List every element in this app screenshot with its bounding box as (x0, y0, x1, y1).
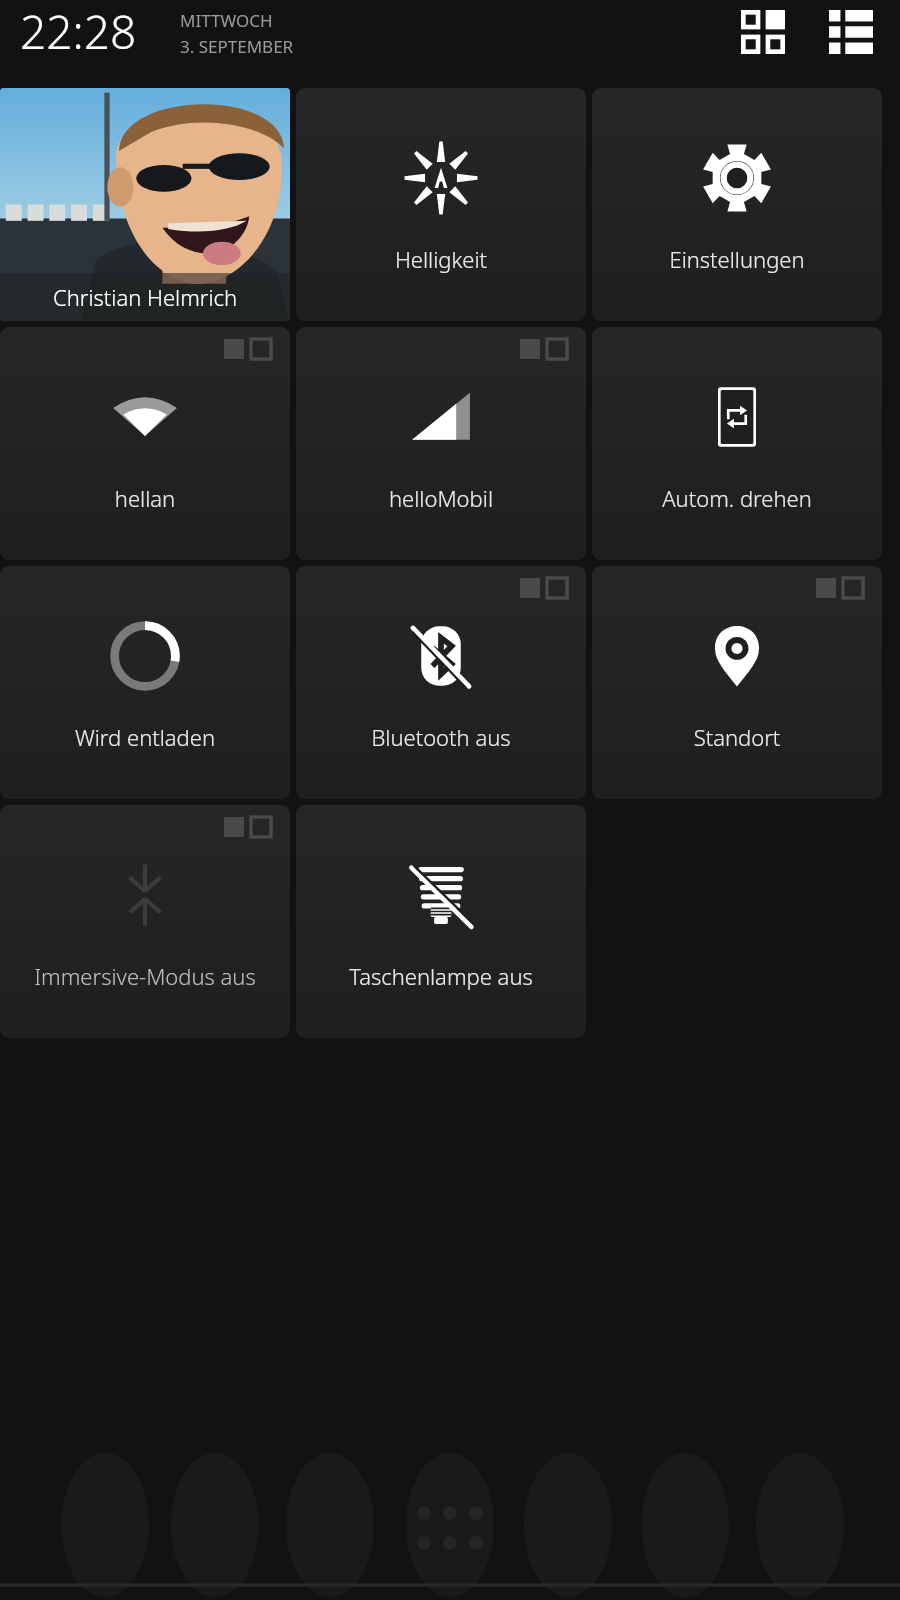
button[interactable]: Helligkeit (296, 88, 586, 321)
button[interactable]: Einstellungen (592, 88, 882, 321)
staticText: 3. SEPTEMBER (180, 35, 294, 58)
button[interactable]: hellan (0, 327, 290, 560)
button[interactable]: Christian Helmrich (0, 88, 290, 321)
staticText: helloMobil (300, 483, 582, 513)
button[interactable]: Standort (592, 566, 882, 799)
staticText: Standort (596, 722, 878, 752)
button[interactable]: Liste (820, 1, 882, 63)
staticText: 22:28 (20, 0, 137, 63)
staticText: hellan (4, 483, 286, 513)
staticText: Helligkeit (300, 244, 582, 274)
button[interactable]: Bluetooth aus (296, 566, 586, 799)
staticText: Christian Helmrich (53, 282, 238, 312)
button[interactable]: helloMobil (296, 327, 586, 560)
button[interactable]: Taschenlampe aus (296, 805, 586, 1038)
staticText: MITTWOCH (180, 9, 273, 32)
button[interactable]: Immersive-Modus aus (0, 805, 290, 1038)
button[interactable]: Autom. drehen (592, 327, 882, 560)
staticText: Einstellungen (596, 244, 878, 274)
button[interactable]: Kacheln (732, 1, 794, 63)
staticText: Autom. drehen (596, 483, 878, 513)
staticText: Wird entladen (4, 722, 286, 752)
staticText: Immersive-Modus aus (4, 961, 286, 991)
staticText: Taschenlampe aus (300, 961, 582, 991)
button[interactable]: Wird entladen (0, 566, 290, 799)
staticText: Bluetooth aus (300, 722, 582, 752)
